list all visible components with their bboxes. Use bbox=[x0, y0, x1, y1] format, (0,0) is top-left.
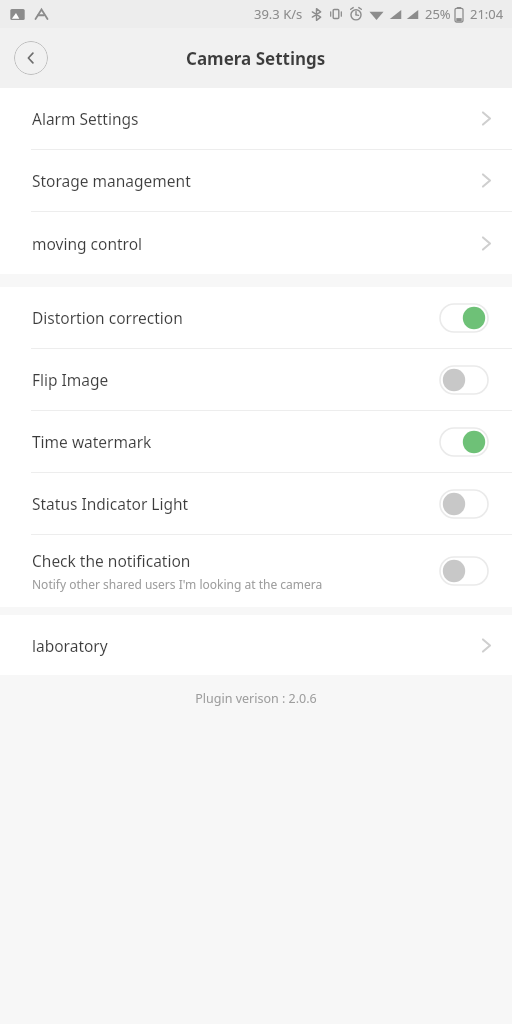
button[interactable]: Check the notification bbox=[0, 535, 512, 607]
button[interactable]: Time watermark bbox=[0, 411, 512, 472]
button[interactable]: Flip Image bbox=[0, 349, 512, 410]
staticText: moving control bbox=[32, 233, 481, 254]
button[interactable]: Toggle on bbox=[440, 428, 488, 456]
button[interactable]: Storage management bbox=[0, 150, 512, 211]
staticText: laboratory bbox=[32, 635, 481, 656]
staticText: Camera Settings bbox=[186, 47, 326, 70]
staticText: Notify other shared users I'm looking at… bbox=[32, 576, 323, 592]
staticText: Plugin verison : 2.0.6 bbox=[195, 690, 317, 707]
button[interactable]: Toggle off bbox=[440, 490, 488, 518]
staticText: 25% bbox=[425, 5, 451, 23]
button[interactable]: Back bbox=[14, 41, 48, 75]
button[interactable]: laboratory bbox=[0, 615, 512, 675]
staticText: Status Indicator Light bbox=[32, 493, 189, 514]
staticText: Distortion correction bbox=[32, 307, 183, 328]
button[interactable]: Alarm Settings bbox=[0, 88, 512, 149]
staticText: Check the notification bbox=[32, 550, 191, 571]
staticText: 39.3 K/s bbox=[254, 5, 303, 23]
button[interactable]: Toggle off bbox=[440, 366, 488, 394]
staticText: Alarm Settings bbox=[32, 108, 481, 129]
staticText: Time watermark bbox=[32, 431, 152, 452]
staticText: Flip Image bbox=[32, 369, 109, 390]
staticText: 21:04 bbox=[470, 5, 504, 23]
button[interactable]: Toggle off bbox=[440, 557, 488, 585]
button[interactable]: Status Indicator Light bbox=[0, 473, 512, 534]
staticText: Storage management bbox=[32, 170, 481, 191]
button[interactable]: Toggle on bbox=[440, 304, 488, 332]
button[interactable]: moving control bbox=[0, 212, 512, 274]
button[interactable]: Distortion correction bbox=[0, 287, 512, 348]
